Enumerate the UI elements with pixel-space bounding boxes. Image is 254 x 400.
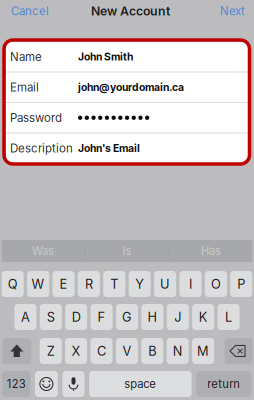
staticText: K bbox=[199, 309, 208, 325]
staticText: L bbox=[225, 309, 232, 325]
button[interactable]: space bbox=[89, 371, 192, 397]
staticText: New Account bbox=[91, 4, 170, 18]
staticText: P bbox=[237, 276, 245, 292]
button[interactable]: Next bbox=[216, 0, 249, 22]
staticText: John's Email bbox=[78, 142, 140, 155]
staticText: 123 bbox=[7, 377, 26, 391]
button[interactable]: Email bbox=[6, 72, 248, 102]
button[interactable]: 123 bbox=[2, 371, 30, 397]
staticText: U bbox=[160, 276, 170, 292]
staticText: Name bbox=[10, 50, 42, 64]
staticText: B bbox=[148, 343, 156, 359]
staticText: John Smith bbox=[78, 50, 133, 63]
staticText: Password bbox=[10, 111, 62, 125]
staticText: O bbox=[211, 276, 221, 292]
button[interactable]: S bbox=[40, 304, 62, 330]
button[interactable]: E bbox=[52, 271, 74, 297]
staticText: john@yourdomain.ca bbox=[78, 81, 184, 94]
button[interactable]: O bbox=[205, 271, 227, 297]
button[interactable]: B bbox=[141, 338, 163, 364]
staticText: Next bbox=[220, 4, 245, 18]
staticText: N bbox=[173, 343, 183, 359]
button[interactable]: C bbox=[90, 338, 112, 364]
button[interactable]: X bbox=[65, 338, 87, 364]
staticText: D bbox=[72, 309, 81, 325]
staticText: S bbox=[47, 309, 55, 325]
button[interactable]: D bbox=[65, 304, 87, 330]
staticText: J bbox=[174, 309, 181, 325]
staticText: space bbox=[124, 377, 156, 391]
staticText: Is bbox=[122, 244, 131, 258]
button[interactable]: U bbox=[154, 271, 176, 297]
button[interactable]: J bbox=[167, 304, 189, 330]
staticText: Y bbox=[135, 276, 144, 292]
staticText: return bbox=[207, 377, 240, 391]
button[interactable]: Y bbox=[129, 271, 151, 297]
button[interactable]: L bbox=[218, 304, 240, 330]
staticText: X bbox=[72, 343, 81, 359]
staticText: C bbox=[97, 343, 106, 359]
button[interactable]: Description bbox=[6, 133, 248, 163]
staticText: R bbox=[85, 276, 93, 292]
button[interactable]: Shift bbox=[2, 338, 31, 364]
staticText: E bbox=[59, 276, 67, 292]
button[interactable]: N bbox=[167, 338, 189, 364]
button[interactable]: G bbox=[116, 304, 138, 330]
button[interactable]: Is bbox=[85, 240, 168, 262]
staticText: H bbox=[147, 309, 157, 325]
button[interactable]: Has bbox=[169, 240, 252, 262]
button[interactable]: Cancel bbox=[7, 0, 53, 22]
button[interactable]: Delete bbox=[224, 338, 252, 364]
staticText: W bbox=[32, 276, 45, 292]
button[interactable]: F bbox=[91, 304, 113, 330]
staticText: Was bbox=[32, 244, 54, 258]
button[interactable]: K bbox=[192, 304, 214, 330]
staticText: T bbox=[110, 276, 118, 292]
button[interactable]: Dictation bbox=[62, 371, 84, 397]
staticText: Z bbox=[47, 343, 55, 359]
staticText: Description bbox=[10, 141, 73, 155]
button[interactable]: Name bbox=[6, 42, 248, 71]
staticText: Cancel bbox=[11, 4, 49, 18]
button[interactable]: V bbox=[116, 338, 138, 364]
button[interactable]: Emoji keyboard bbox=[35, 371, 58, 397]
staticText: Q bbox=[8, 276, 18, 292]
staticText: F bbox=[98, 309, 106, 325]
staticText: M bbox=[197, 343, 209, 359]
button[interactable]: A bbox=[14, 304, 36, 330]
button[interactable]: R bbox=[78, 271, 100, 297]
button[interactable]: T bbox=[103, 271, 125, 297]
staticText: G bbox=[122, 309, 132, 325]
button[interactable]: Z bbox=[40, 338, 62, 364]
staticText: Has bbox=[201, 244, 221, 258]
button[interactable]: P bbox=[230, 271, 252, 297]
button[interactable]: M bbox=[192, 338, 214, 364]
staticText: A bbox=[21, 309, 30, 325]
button[interactable]: Q bbox=[2, 271, 24, 297]
button[interactable]: return bbox=[196, 371, 251, 397]
staticText: Email bbox=[10, 80, 39, 94]
button[interactable]: H bbox=[141, 304, 163, 330]
staticText: I bbox=[189, 276, 192, 292]
button[interactable]: W bbox=[27, 271, 49, 297]
staticText: V bbox=[122, 343, 131, 359]
button[interactable]: I bbox=[179, 271, 201, 297]
button[interactable]: Was bbox=[1, 240, 84, 262]
button[interactable]: Password bbox=[6, 103, 248, 132]
